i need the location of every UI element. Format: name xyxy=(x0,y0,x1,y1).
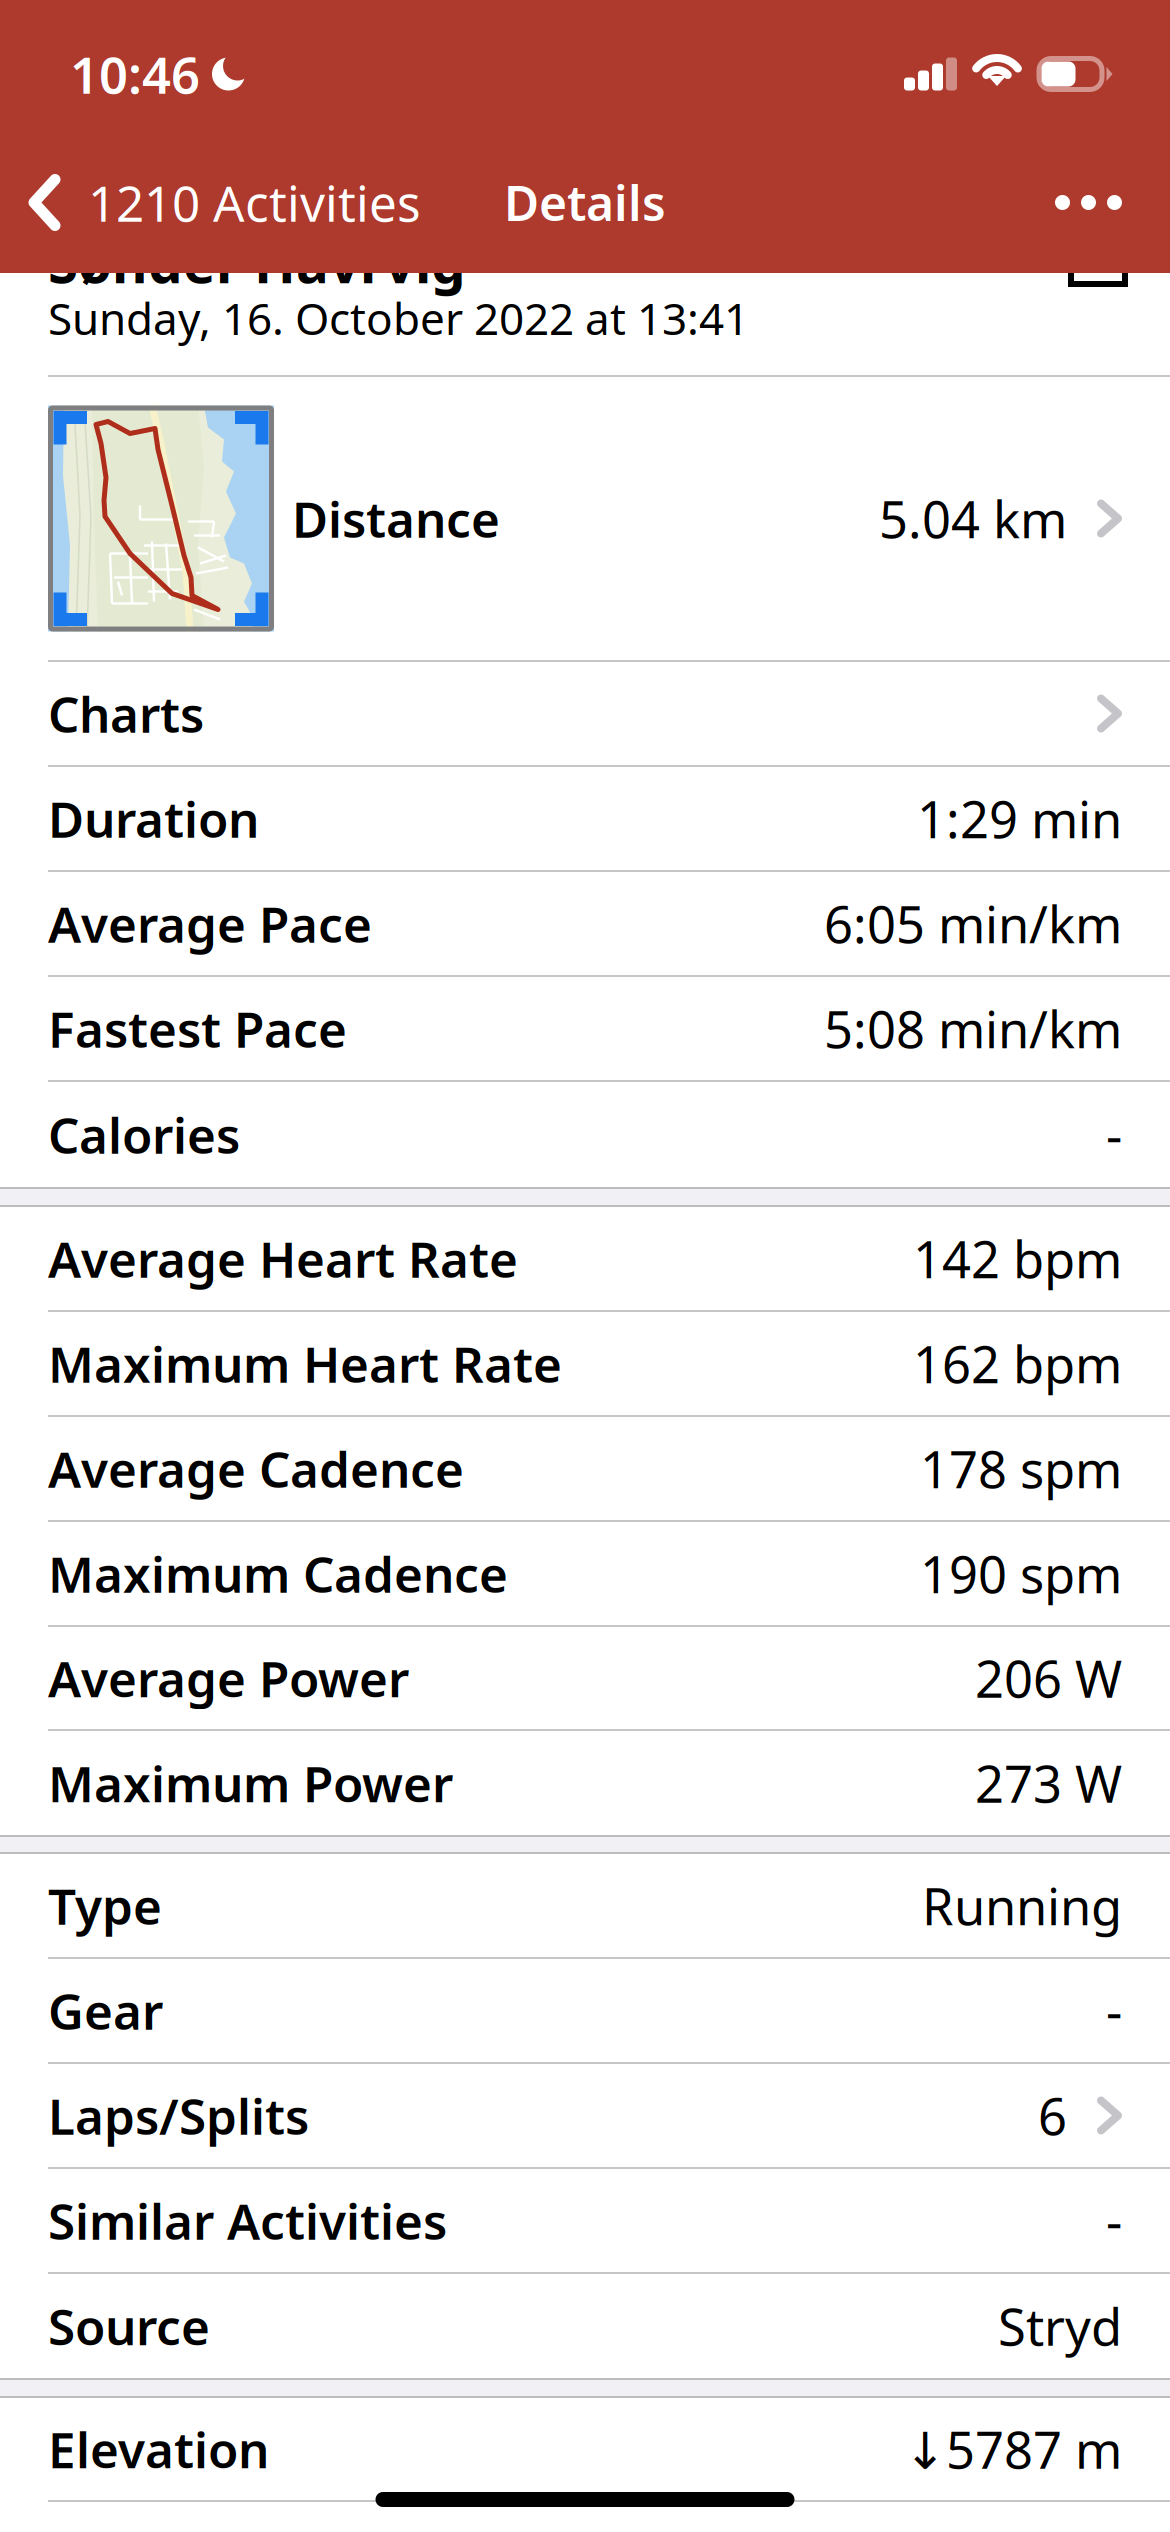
staticText: 178 spm xyxy=(920,1435,1122,1502)
button[interactable]: Source xyxy=(0,2274,1170,2378)
staticText: 10:46 xyxy=(70,40,200,108)
button[interactable]: Elevation xyxy=(0,2398,1170,2502)
staticText: Charts xyxy=(48,681,204,746)
staticText: Details xyxy=(504,171,666,234)
button[interactable]: Duration xyxy=(0,767,1170,872)
staticText: 1:29 min xyxy=(917,785,1122,852)
staticText: 6:05 min/km xyxy=(824,890,1122,957)
staticText: 5:08 min/km xyxy=(824,995,1122,1062)
staticText: ↓5787 m xyxy=(904,2415,1122,2483)
staticText: 273 W xyxy=(975,1749,1122,1817)
button[interactable]: Maximum Power xyxy=(0,1731,1170,1835)
staticText: Maximum Heart Rate xyxy=(48,1331,562,1396)
button[interactable]: Maximum Heart Rate xyxy=(0,1312,1170,1417)
button[interactable]: Distance xyxy=(0,377,1170,662)
staticText: Duration xyxy=(48,786,259,851)
staticText: - xyxy=(1106,1101,1122,1168)
staticText: Maximum Cadence xyxy=(48,1541,508,1606)
staticText: Sønder Havrvig xyxy=(48,226,466,298)
button[interactable]: Average Power xyxy=(0,1627,1170,1731)
staticText: Type xyxy=(48,1873,162,1938)
staticText: 206 W xyxy=(975,1644,1122,1712)
staticText: Sunday, 16. October 2022 at 13:41 xyxy=(48,289,749,347)
staticText: - xyxy=(1106,2187,1122,2254)
staticText: Running xyxy=(922,1872,1122,1939)
staticText: 1210 Activities xyxy=(88,170,421,235)
staticText: Stryd xyxy=(998,2292,1122,2360)
staticText: Similar Activities xyxy=(48,2188,447,2253)
staticText: 190 spm xyxy=(920,1540,1122,1607)
button[interactable]: Charts xyxy=(0,662,1170,767)
button[interactable]: 1210 Activities xyxy=(0,142,439,262)
staticText: Gear xyxy=(48,1978,163,2043)
button[interactable]: Similar Activities xyxy=(0,2169,1170,2274)
button[interactable]: Maximum Cadence xyxy=(0,1522,1170,1627)
staticText: 162 bpm xyxy=(913,1330,1122,1397)
button[interactable]: Calories xyxy=(0,1082,1170,1187)
staticText: Laps/Splits xyxy=(48,2083,309,2148)
staticText: Maximum Power xyxy=(48,1750,453,1816)
staticText: Source xyxy=(48,2293,210,2359)
button[interactable]: More options xyxy=(1031,142,1146,262)
staticText: Fastest Pace xyxy=(48,996,347,1061)
staticText: 6 xyxy=(1038,2082,1067,2149)
staticText: Distance xyxy=(292,486,500,551)
button[interactable]: Fastest Pace xyxy=(0,977,1170,1082)
staticText: Average Cadence xyxy=(48,1436,464,1501)
button[interactable]: Average Cadence xyxy=(0,1417,1170,1522)
button[interactable]: Laps/Splits xyxy=(0,2064,1170,2169)
button[interactable]: Average Pace xyxy=(0,872,1170,977)
staticText: Elevation xyxy=(48,2416,269,2482)
staticText: Average Power xyxy=(48,1645,409,1711)
staticText: Average Pace xyxy=(48,891,372,956)
button[interactable]: Average Heart Rate xyxy=(0,1207,1170,1312)
staticText: 142 bpm xyxy=(913,1225,1122,1292)
staticText: 5.04 km xyxy=(879,485,1067,552)
button[interactable]: Gear xyxy=(0,1959,1170,2064)
staticText: Calories xyxy=(48,1102,240,1167)
staticText: Average Heart Rate xyxy=(48,1226,518,1291)
button[interactable]: Type xyxy=(0,1854,1170,1959)
staticText: - xyxy=(1106,1977,1122,2044)
